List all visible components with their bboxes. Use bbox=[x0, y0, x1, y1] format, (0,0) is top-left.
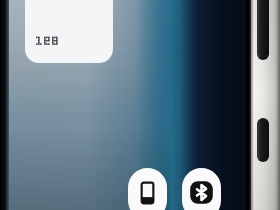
button[interactable]: Device bbox=[128, 168, 167, 210]
button[interactable]: Bluetooth bbox=[182, 168, 221, 210]
button[interactable] bbox=[25, 0, 113, 63]
